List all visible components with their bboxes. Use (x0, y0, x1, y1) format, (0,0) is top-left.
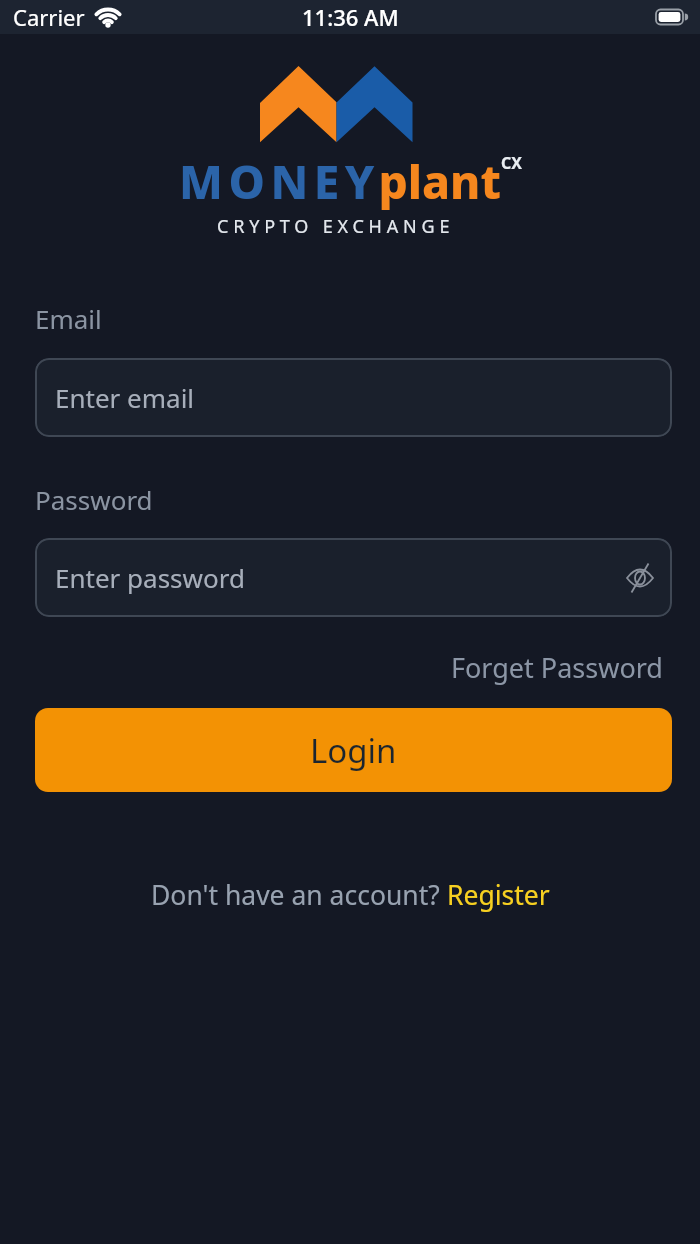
staticText: Carrier (13, 2, 85, 32)
staticText: Don't have an account? (151, 877, 447, 913)
staticText: 11:36 AM (302, 2, 399, 32)
staticText: MONEYplant (179, 150, 501, 213)
staticText: Email (35, 301, 102, 336)
staticText: Password (35, 482, 153, 517)
staticText: CX (501, 152, 522, 174)
button[interactable]: Forget Password (451, 649, 663, 686)
staticText: Login (310, 728, 397, 773)
button[interactable]: Enter password (35, 538, 672, 617)
staticText: Enter email (55, 380, 195, 415)
button[interactable]: Login (35, 708, 672, 792)
staticText: Enter password (55, 560, 245, 595)
staticText: CRYPTO EXCHANGE (217, 214, 455, 239)
button[interactable]: Register (447, 877, 550, 913)
button[interactable]: Enter email (35, 358, 672, 437)
